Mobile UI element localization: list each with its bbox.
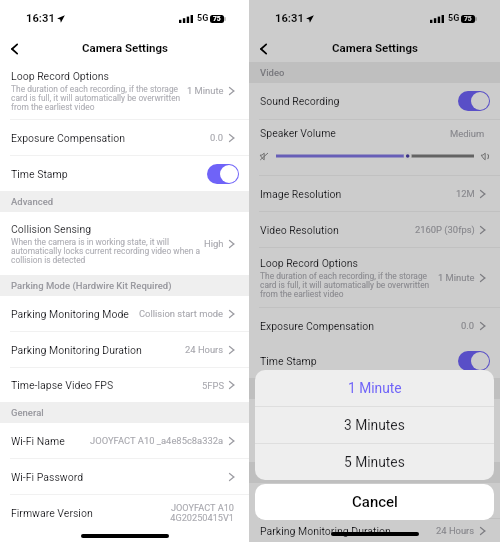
staticText: Firmware Version: [11, 507, 93, 519]
staticText: High: [204, 238, 224, 249]
staticText: Cancel: [352, 493, 398, 511]
staticText: 0.0: [210, 132, 224, 143]
staticText: 3 Minutes: [344, 417, 405, 433]
button[interactable]: Back: [4, 39, 24, 59]
staticText: Parking Mode (Hardwire Kit Required): [11, 280, 172, 291]
staticText: JOOYFACT A10 4G20250415V1: [170, 502, 234, 524]
staticText: 5 Minutes: [344, 454, 405, 470]
staticText: Wi-Fi Password: [11, 471, 84, 483]
button[interactable]: Parking Monitoring Mode: [249, 483, 500, 518]
staticText: 0.0: [461, 320, 475, 331]
button[interactable]: Loop Record Options: [0, 62, 249, 119]
button[interactable]: Parking Monitoring Duration: [0, 332, 249, 367]
staticText: 1 Minute: [348, 380, 402, 396]
button[interactable]: Time Stamp: [0, 156, 249, 191]
staticText: 5G: [197, 13, 209, 24]
staticText: 1 Minute: [187, 85, 224, 96]
staticText: 24 Hours: [436, 525, 475, 536]
button[interactable]: Exposure Compensation: [0, 120, 249, 155]
button[interactable]: Firmware Version: [0, 495, 249, 530]
button[interactable]: Video Resolution: [249, 212, 500, 247]
button[interactable]: Time-lapse Video FPS: [0, 368, 249, 402]
staticText: The duration of each recording, if the s…: [11, 84, 181, 112]
button[interactable]: Cancel: [255, 484, 494, 520]
button[interactable]: Parking Monitoring Duration: [249, 519, 500, 542]
button[interactable]: Exposure Compensation: [249, 308, 500, 343]
staticText: Sound Recording: [260, 95, 340, 107]
staticText: The duration of each recording, if the s…: [260, 271, 430, 299]
button[interactable]: Back: [253, 39, 273, 59]
staticText: Camera Settings: [332, 41, 418, 54]
staticText: Video: [260, 67, 285, 78]
staticText: Loop Record Options: [260, 257, 358, 269]
staticText: Camera Settings: [82, 41, 168, 54]
staticText: Parking Monitoring Mode: [11, 308, 129, 320]
staticText: Exposure Compensation: [11, 132, 126, 144]
button[interactable]: 1 Minute: [255, 370, 494, 406]
button[interactable]: Time Stamp: [249, 343, 500, 378]
staticText: 5G: [448, 13, 460, 24]
staticText: Loop Record Options: [11, 70, 109, 82]
staticText: 75: [464, 15, 472, 23]
staticText: Collision Sensing: [11, 223, 92, 235]
button[interactable]: 3 Minutes: [255, 407, 494, 443]
staticText: When the camera is in working state, it …: [260, 424, 450, 452]
staticText: Time-lapse Video FPS: [11, 379, 114, 391]
staticText: Speaker Volume: [260, 127, 336, 139]
button[interactable]: Wi-Fi Name: [0, 423, 249, 458]
staticText: 1 Minute: [438, 272, 475, 283]
staticText: Wi-Fi Name: [11, 435, 65, 447]
staticText: JOOYFACT A10 _a4e85c8a332a: [90, 435, 224, 446]
staticText: Collision start mode: [390, 495, 475, 506]
button[interactable]: Wi-Fi Password: [0, 459, 249, 494]
staticText: Time Stamp: [11, 168, 68, 180]
staticText: Image Resolution: [260, 188, 342, 200]
staticText: 16:31: [26, 12, 55, 25]
staticText: Parking Monitoring Mode: [260, 495, 378, 507]
staticText: Parking Monitoring Duration: [11, 344, 142, 356]
staticText: Parking Monitoring Duration: [260, 525, 391, 537]
button[interactable]: Sound Recording: [249, 83, 500, 119]
staticText: General: [11, 407, 44, 418]
staticText: When the camera is in working state, it …: [11, 237, 200, 265]
staticText: Exposure Compensation: [260, 320, 375, 332]
button[interactable]: Image Resolution: [249, 176, 500, 211]
button[interactable]: Parking Monitoring Mode: [0, 296, 249, 331]
button[interactable]: Collision Sensing: [0, 212, 249, 275]
button[interactable]: Collision Sensing: [249, 399, 500, 462]
staticText: Time Stamp: [260, 355, 317, 367]
staticText: 16:31: [275, 12, 304, 25]
staticText: 24 Hours: [185, 344, 224, 355]
staticText: Advanced: [11, 196, 54, 207]
staticText: 75: [213, 15, 221, 23]
staticText: 2160P (30fps): [415, 224, 475, 235]
button[interactable]: 5 Minutes: [255, 444, 494, 480]
button[interactable]: Loop Record Options: [249, 248, 500, 307]
staticText: 5FPS: [202, 380, 224, 391]
staticText: Video Resolution: [260, 224, 339, 236]
staticText: 12M: [456, 188, 475, 199]
staticText: Collision start mode: [139, 308, 224, 319]
staticText: Medium: [450, 128, 485, 139]
